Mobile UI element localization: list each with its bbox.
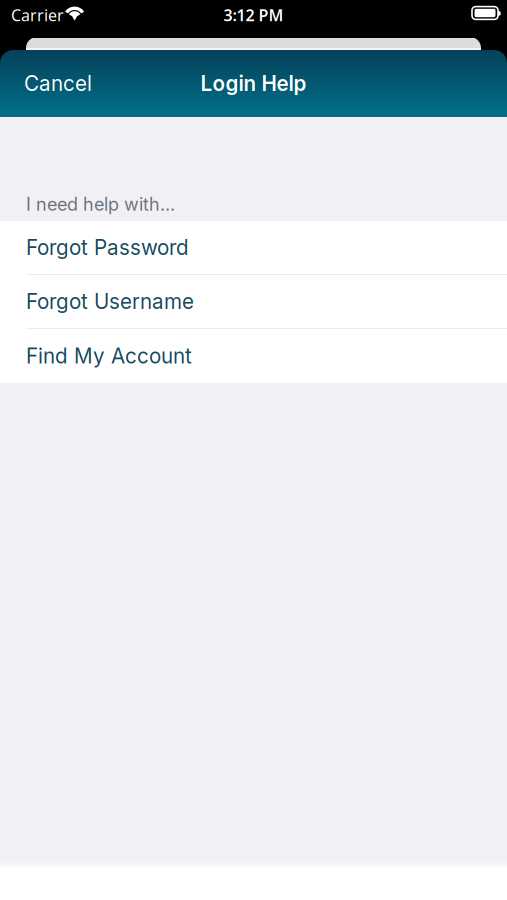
staticText: Cancel	[24, 71, 92, 96]
staticText: Forgot Password	[26, 235, 189, 260]
staticText: Login Help	[200, 71, 306, 96]
button[interactable]: Forgot Username	[0, 275, 507, 329]
staticText: I need help with...	[26, 193, 175, 215]
button[interactable]: Find My Account	[0, 329, 507, 383]
button[interactable]: Cancel	[0, 59, 116, 108]
staticText: Forgot Username	[26, 289, 194, 314]
staticText: Carrier	[11, 4, 64, 26]
button[interactable]: Forgot Password	[0, 221, 507, 275]
staticText: 3:12 PM	[223, 4, 283, 26]
staticText: Find My Account	[26, 343, 192, 368]
